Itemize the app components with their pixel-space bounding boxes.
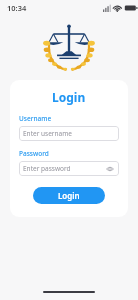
staticText: Enter username <box>23 129 72 138</box>
staticText: Login <box>58 190 80 201</box>
staticText: 10:34 <box>7 3 27 13</box>
button[interactable]: Enter username <box>19 126 119 141</box>
button[interactable]: Show password <box>105 164 115 174</box>
staticText: Password <box>19 149 49 158</box>
button[interactable]: Login <box>33 187 105 204</box>
staticText: Enter password <box>23 164 71 173</box>
button[interactable]: Enter password <box>19 161 119 176</box>
staticText: Login <box>52 89 86 105</box>
staticText: Username <box>19 114 52 123</box>
